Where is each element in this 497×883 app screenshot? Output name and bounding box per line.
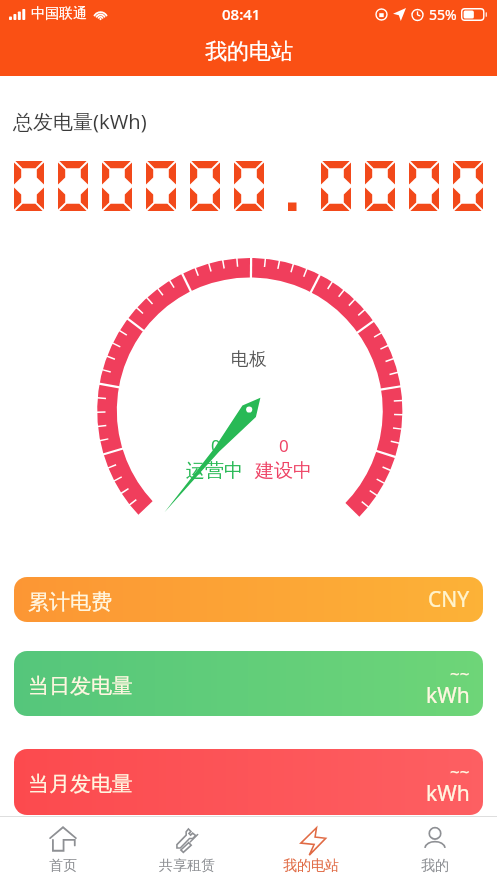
staticText: 共享租赁 — [159, 857, 215, 875]
staticText: 首页 — [49, 857, 77, 875]
button[interactable]: 首页 — [0, 817, 125, 883]
staticText: 08:41 — [222, 4, 261, 24]
button[interactable]: 我的 — [373, 817, 497, 883]
staticText: 中国联通 — [31, 5, 87, 23]
staticText: 总发电量(kWh) — [13, 108, 147, 135]
staticText: 当月发电量 — [28, 771, 133, 797]
staticText: 0 — [211, 434, 221, 457]
staticText: 当日发电量 — [28, 673, 133, 699]
button[interactable]: 当月发电量 — [14, 749, 483, 815]
staticText: 我的电站 — [205, 38, 293, 66]
staticText: 55% — [429, 5, 457, 24]
button[interactable]: 共享租赁 — [125, 817, 249, 883]
staticText: kWh — [426, 779, 470, 808]
staticText: 0 — [279, 434, 289, 457]
staticText: 累计电费 — [28, 589, 112, 615]
staticText: 我的 — [421, 857, 449, 875]
button[interactable]: 累计电费 — [14, 577, 483, 622]
button[interactable]: 当日发电量 — [14, 651, 483, 716]
staticText: 运营中 — [186, 459, 243, 483]
staticText: ~~ — [450, 662, 470, 685]
staticText: 电板 — [231, 348, 267, 371]
staticText: kWh — [426, 681, 470, 710]
button[interactable]: 我的电站 — [249, 817, 373, 883]
staticText: 建设中 — [255, 459, 312, 483]
staticText: CNY — [428, 585, 470, 614]
staticText: ~~ — [450, 760, 470, 783]
staticText: 我的电站 — [283, 857, 339, 875]
